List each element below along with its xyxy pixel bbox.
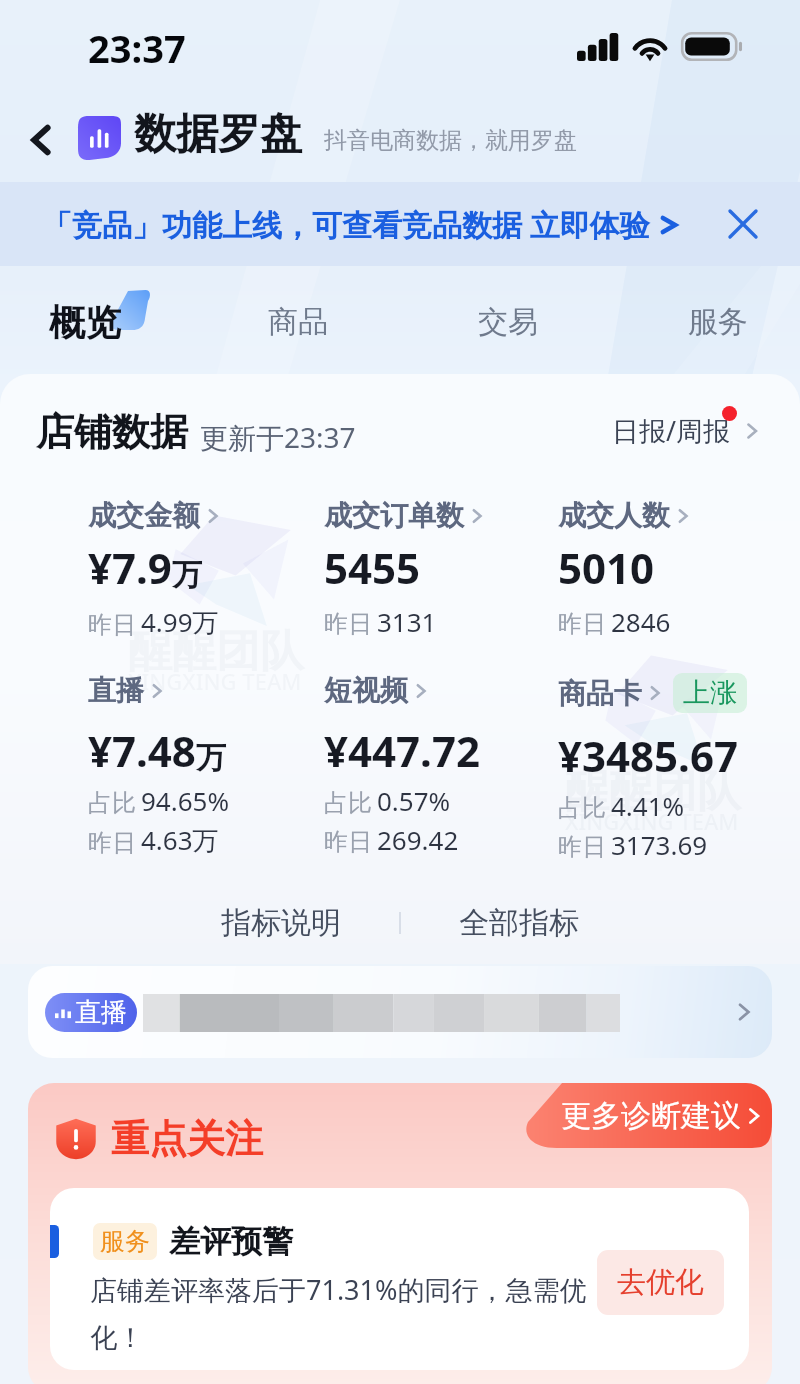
button[interactable]: Close bbox=[718, 199, 768, 249]
staticText: 昨日 bbox=[324, 827, 372, 857]
staticText: 日报/周报 bbox=[612, 412, 731, 449]
button[interactable]: 商品 bbox=[238, 266, 358, 378]
button[interactable]: 概览 bbox=[25, 266, 145, 378]
staticText: ¥447.72 bbox=[324, 722, 480, 779]
button[interactable]: 全部指标 bbox=[459, 904, 579, 942]
staticText: 昨日 bbox=[88, 828, 136, 858]
staticText: 短视频 bbox=[324, 673, 408, 708]
staticText: 万 bbox=[196, 739, 226, 777]
button[interactable]: 直播 bbox=[28, 966, 772, 1058]
button[interactable]: Back bbox=[16, 114, 68, 166]
button[interactable]: 服务 bbox=[658, 266, 778, 378]
staticText: ¥3485.67 bbox=[558, 727, 738, 784]
staticText: 店铺差评率落后于71.31%的同行，急需优化！ bbox=[90, 1271, 590, 1355]
staticText: 直播 bbox=[75, 996, 127, 1029]
staticText: 「竞品」功能上线，可查看竞品数据 立即体验 bbox=[42, 204, 658, 245]
staticText: 更新于23:37 bbox=[200, 418, 356, 456]
button[interactable]: 更多诊断建议 bbox=[528, 1083, 772, 1148]
staticText: 占比 bbox=[324, 788, 372, 818]
staticText: 成交订单数 bbox=[324, 498, 464, 533]
staticText: 商品 bbox=[268, 303, 328, 341]
staticText: 3131 bbox=[377, 604, 437, 639]
button[interactable]: 成交金额 bbox=[88, 498, 221, 640]
staticText: 服务 bbox=[688, 303, 748, 341]
staticText: ¥7.9 bbox=[88, 539, 172, 596]
staticText: 269.42 bbox=[377, 822, 459, 857]
staticText: 去优化 bbox=[617, 1264, 704, 1301]
button[interactable]: 去优化 bbox=[597, 1250, 724, 1315]
staticText: XINGXING TEAM bbox=[565, 806, 739, 836]
staticText: 0.57% bbox=[377, 783, 451, 818]
staticText: 5455 bbox=[324, 539, 421, 596]
staticText: ¥7.48 bbox=[88, 722, 196, 779]
staticText: 昨日 bbox=[88, 610, 136, 640]
staticText: 服务 bbox=[100, 1226, 150, 1257]
staticText: 昨日 bbox=[324, 609, 372, 639]
staticText: 占比 bbox=[88, 788, 136, 818]
staticText: 交易 bbox=[478, 303, 538, 341]
button[interactable]: 指标说明 bbox=[221, 904, 341, 942]
staticText: 4.63万 bbox=[141, 822, 219, 858]
staticText: 4.41% bbox=[611, 788, 685, 823]
staticText: 3173.69 bbox=[611, 827, 708, 862]
button[interactable]: 短视频 bbox=[324, 673, 480, 857]
staticText: 数据罗盘 bbox=[134, 108, 302, 161]
staticText: 万 bbox=[172, 556, 202, 594]
staticText: 成交金额 bbox=[88, 498, 200, 533]
staticText: 概览 bbox=[49, 300, 121, 345]
staticText: 2846 bbox=[611, 604, 671, 639]
staticText: XINGXING TEAM bbox=[128, 666, 302, 696]
staticText: 昨日 bbox=[558, 832, 606, 862]
staticText: 5010 bbox=[558, 539, 655, 596]
staticText: 上涨 bbox=[683, 676, 737, 710]
button[interactable]: 「竞品」功能上线，可查看竞品数据 立即体验 bbox=[0, 182, 800, 266]
button[interactable]: 直播 bbox=[88, 673, 230, 858]
staticText: 23:37 bbox=[88, 22, 186, 74]
staticText: 差评预警 bbox=[169, 1222, 293, 1261]
staticText: 直播 bbox=[88, 673, 144, 708]
staticText: 4.99万 bbox=[141, 604, 219, 640]
staticText: 成交人数 bbox=[558, 498, 670, 533]
staticText: 店铺数据 bbox=[36, 408, 188, 456]
staticText: 94.65% bbox=[141, 783, 230, 818]
staticText: 商品卡 bbox=[558, 676, 642, 711]
button[interactable]: 成交人数 bbox=[558, 498, 691, 639]
staticText: 抖音电商数据，就用罗盘 bbox=[324, 126, 577, 155]
staticText: 昨日 bbox=[558, 609, 606, 639]
staticText: 醒醒团队 bbox=[128, 624, 304, 679]
button[interactable]: 商品卡 bbox=[558, 673, 747, 862]
staticText: 更多诊断建议 bbox=[561, 1097, 741, 1135]
staticText: 占比 bbox=[558, 793, 606, 823]
button[interactable]: 日报/周报 bbox=[612, 412, 761, 449]
staticText: 重点关注 bbox=[111, 1115, 263, 1163]
button[interactable]: 交易 bbox=[448, 266, 568, 378]
staticText: 醒醒团队 bbox=[565, 764, 741, 819]
button[interactable]: 成交订单数 bbox=[324, 498, 485, 639]
